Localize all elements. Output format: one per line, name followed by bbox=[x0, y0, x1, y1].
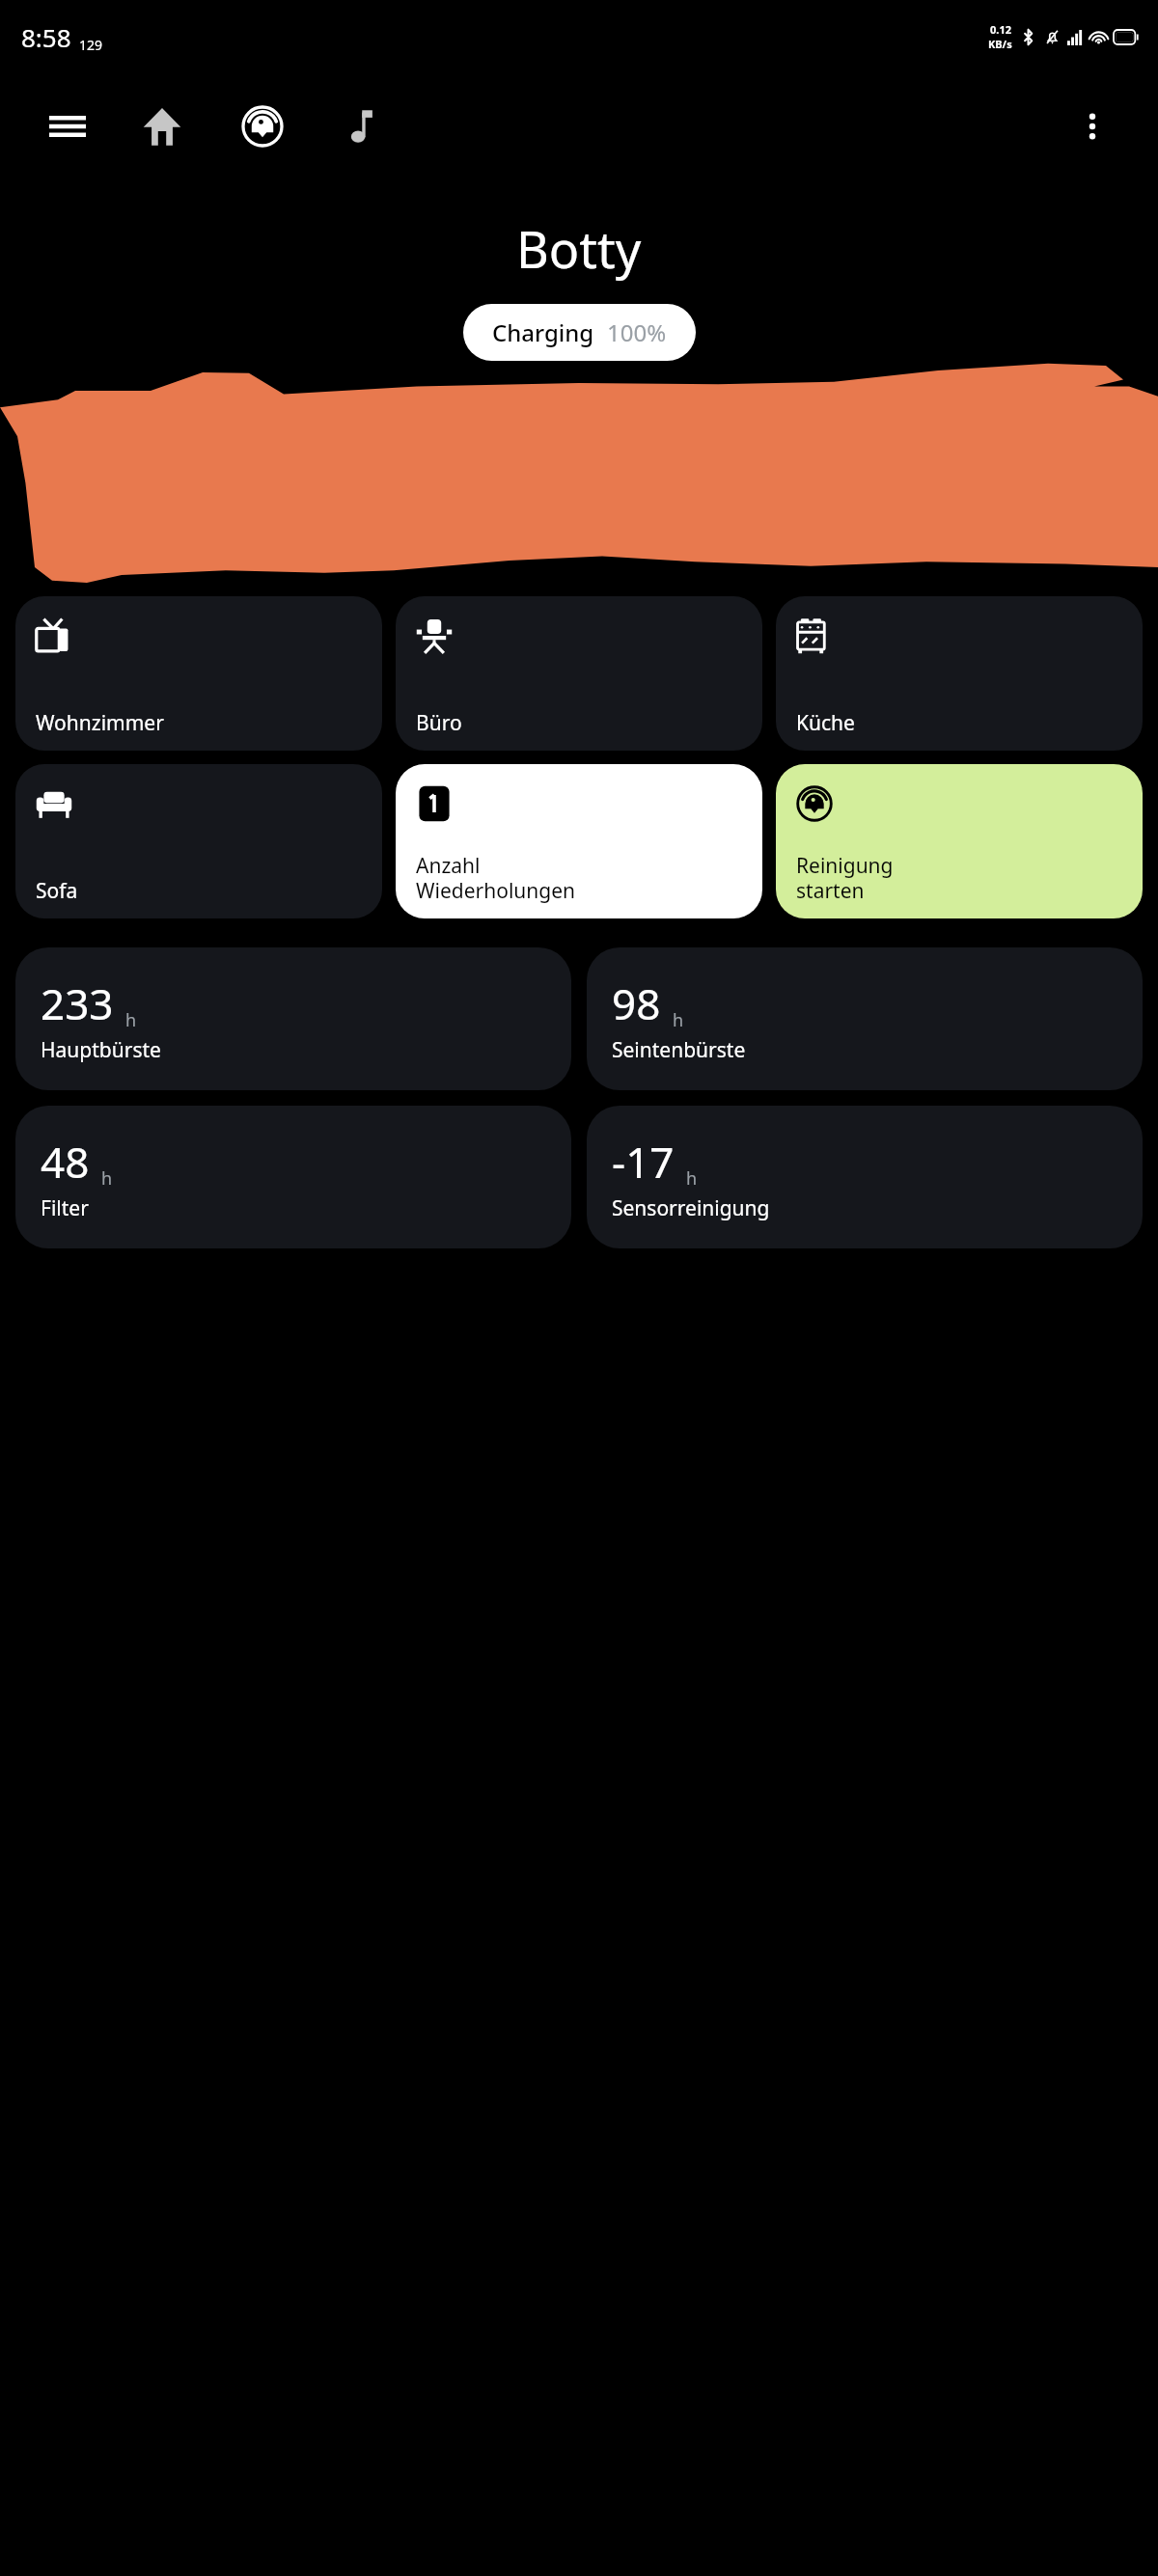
staticText: Charging bbox=[492, 316, 594, 348]
button[interactable]: Robot bbox=[232, 96, 293, 157]
staticText: Botty bbox=[516, 214, 642, 283]
staticText: Seintenbürste bbox=[612, 1036, 746, 1064]
staticText: 98 bbox=[612, 974, 661, 1032]
button[interactable]: Reinigung starten bbox=[776, 764, 1143, 918]
staticText: Reinigung starten bbox=[796, 852, 894, 905]
staticText: 129 bbox=[79, 36, 103, 54]
staticText: 233 bbox=[41, 974, 114, 1032]
button[interactable]: Anzahl Wiederholungen bbox=[396, 764, 762, 918]
staticText: Filter bbox=[41, 1194, 89, 1222]
button[interactable]: Charging bbox=[463, 304, 696, 361]
button[interactable]: 98 bbox=[587, 947, 1143, 1090]
staticText: Küche bbox=[796, 709, 855, 737]
button[interactable]: Büro bbox=[396, 596, 762, 751]
staticText: Sofa bbox=[36, 877, 78, 905]
staticText: Wohnzimmer bbox=[36, 709, 164, 737]
button[interactable]: Menu bbox=[37, 96, 98, 157]
staticText: h bbox=[673, 1008, 684, 1032]
staticText: Anzahl Wiederholungen bbox=[416, 852, 576, 905]
staticText: 100% bbox=[607, 316, 667, 348]
button[interactable]: Küche bbox=[776, 596, 1143, 751]
staticText: Hauptbürste bbox=[41, 1036, 161, 1064]
button[interactable]: More options bbox=[1063, 97, 1121, 155]
staticText: h bbox=[101, 1166, 113, 1191]
staticText: h bbox=[686, 1166, 698, 1191]
button[interactable]: 48 bbox=[15, 1106, 571, 1248]
button[interactable]: Music bbox=[332, 96, 394, 157]
button[interactable]: -17 bbox=[587, 1106, 1143, 1248]
button[interactable]: 233 bbox=[15, 947, 571, 1090]
staticText: Büro bbox=[416, 709, 462, 737]
staticText: 8:58 bbox=[21, 20, 71, 54]
staticText: Sensorreinigung bbox=[612, 1194, 770, 1222]
button[interactable]: Home bbox=[131, 96, 193, 157]
staticText: KB/s bbox=[988, 37, 1012, 51]
staticText: -17 bbox=[612, 1133, 675, 1191]
button[interactable]: Sofa bbox=[15, 764, 382, 918]
staticText: 48 bbox=[41, 1133, 90, 1191]
button[interactable]: Wohnzimmer bbox=[15, 596, 382, 751]
staticText: h bbox=[125, 1008, 137, 1032]
staticText: 0.12 bbox=[990, 22, 1011, 37]
